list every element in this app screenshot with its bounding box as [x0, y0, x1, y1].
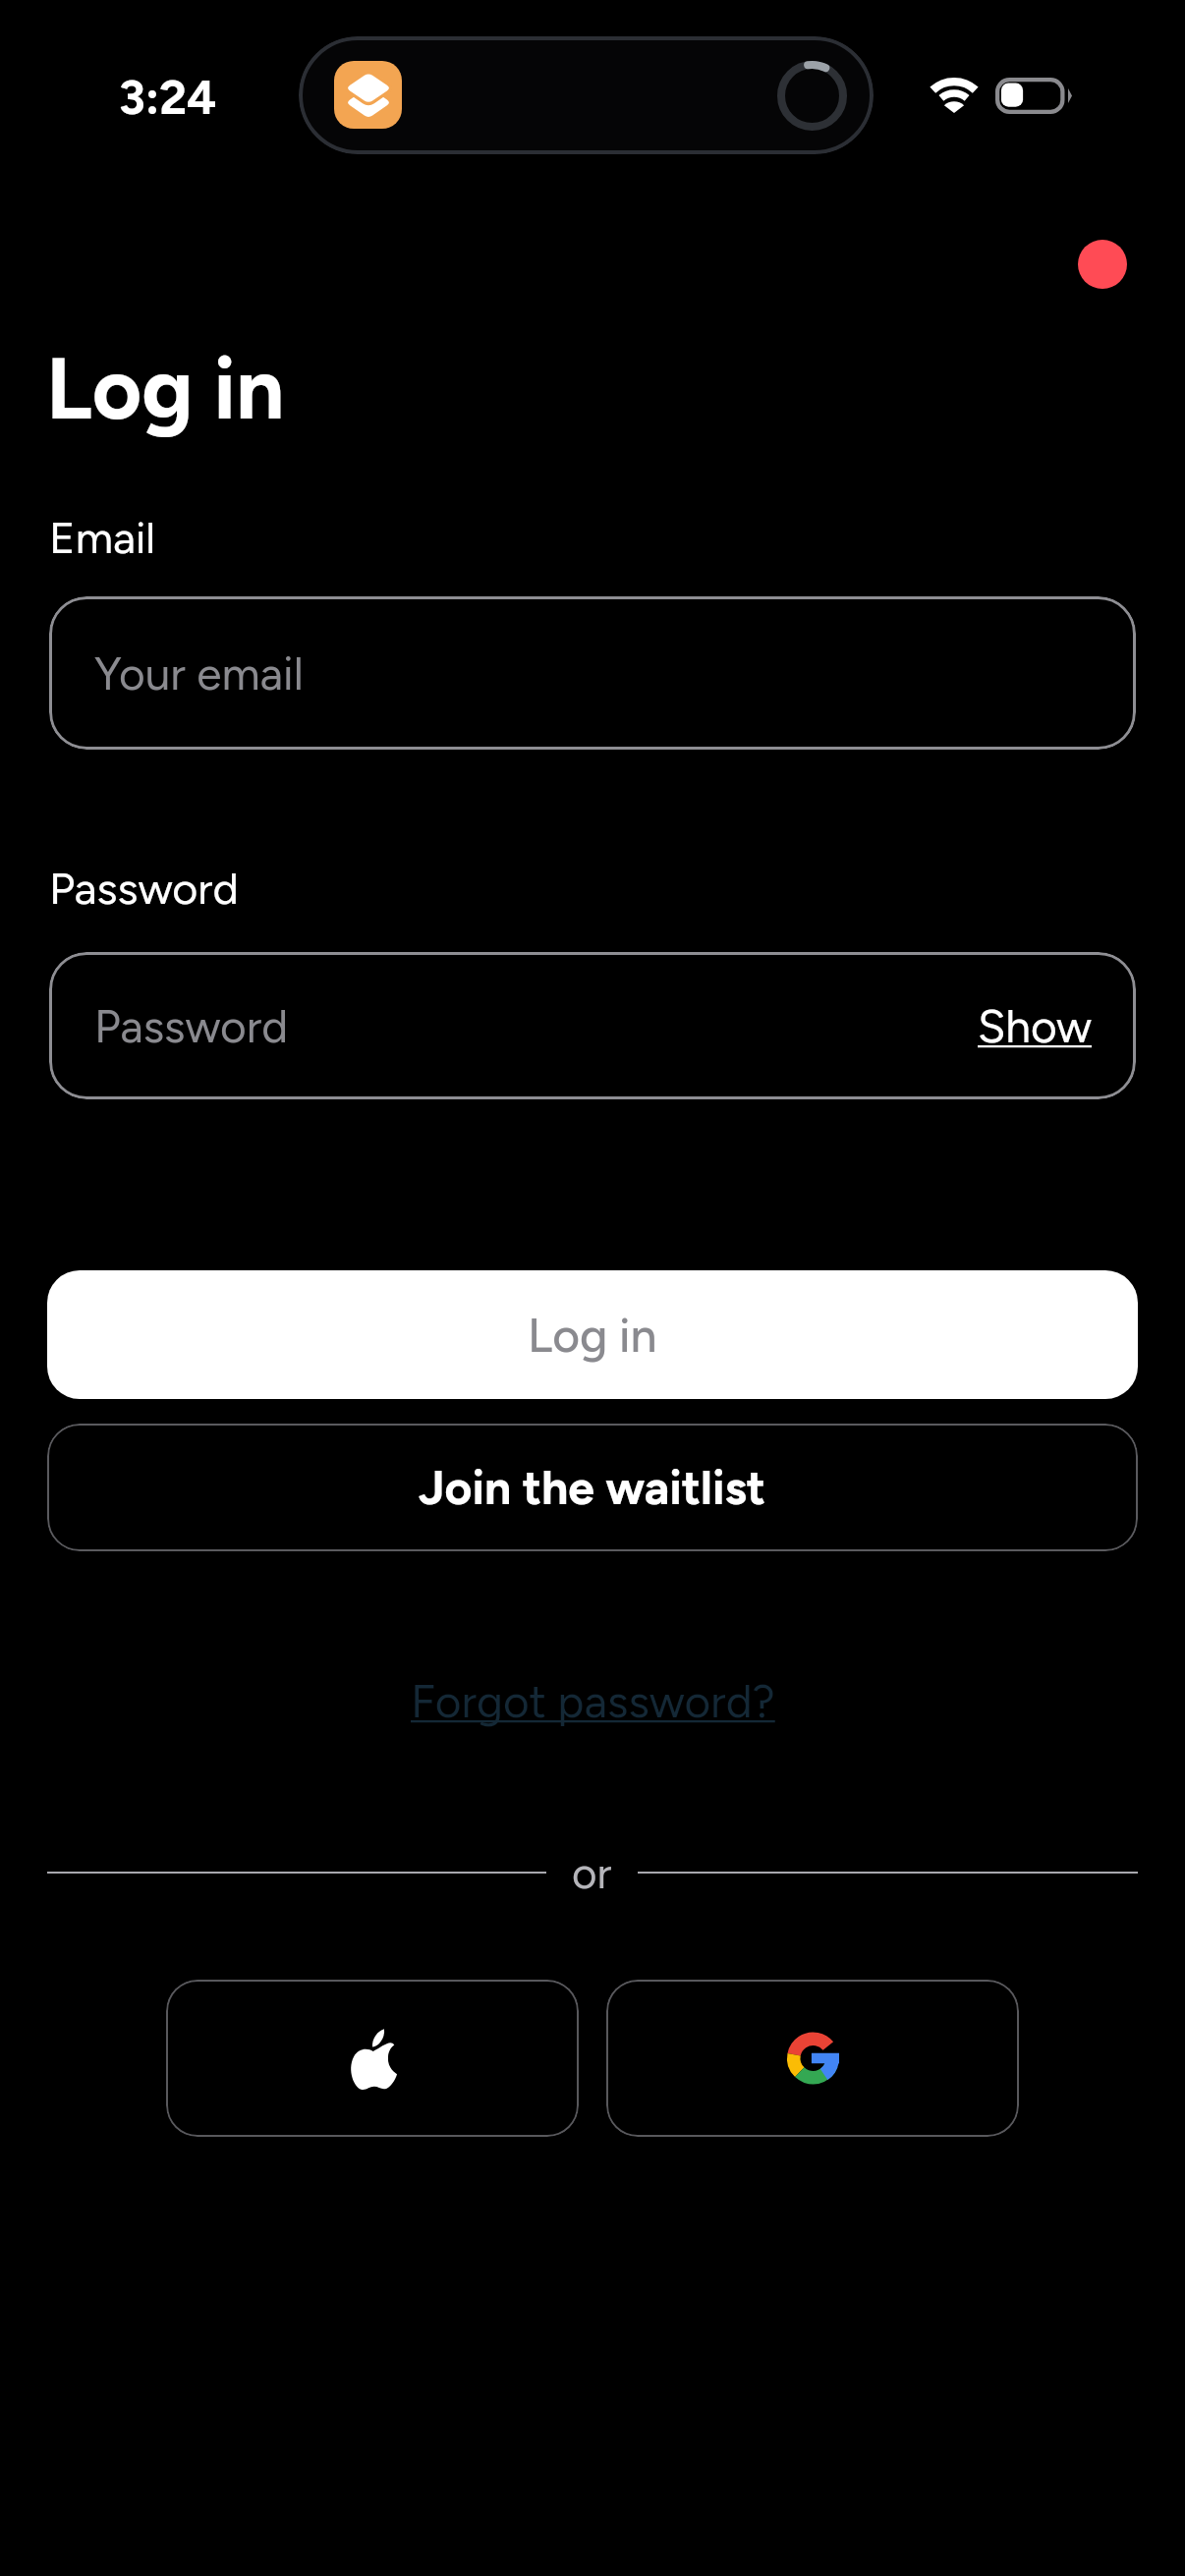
button[interactable]: Continue with Apple: [166, 1980, 579, 2137]
staticText: Show: [978, 999, 1093, 1053]
staticText: Log in: [528, 1307, 657, 1364]
button[interactable]: Password: [49, 952, 1136, 1099]
button[interactable]: Show: [948, 952, 1136, 1099]
button[interactable]: Join the waitlist: [47, 1424, 1138, 1551]
button[interactable]: Log in: [47, 1270, 1138, 1399]
button[interactable]: Continue with Google: [606, 1980, 1019, 2137]
staticText: Log in: [46, 337, 285, 439]
staticText: Email: [49, 511, 156, 564]
staticText: Forgot password?: [411, 1674, 775, 1728]
button[interactable]: Forgot password?: [387, 1664, 799, 1738]
staticText: 3:24: [119, 69, 217, 126]
staticText: or: [572, 1847, 612, 1898]
staticText: Join the waitlist: [419, 1459, 766, 1516]
staticText: Your email: [94, 646, 304, 700]
staticText: Password: [49, 862, 239, 915]
staticText: Password: [94, 999, 289, 1053]
button[interactable]: Your email: [49, 596, 1136, 750]
